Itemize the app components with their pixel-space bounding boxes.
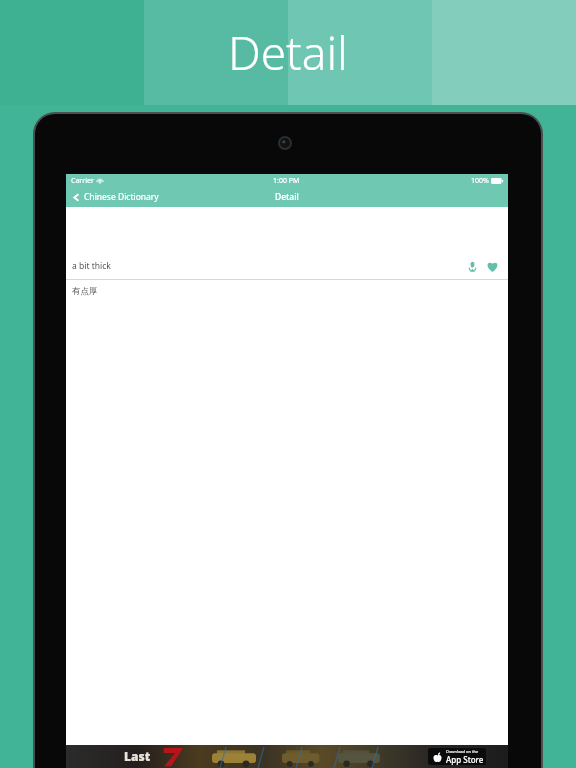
- staticText: Carrier: [71, 176, 94, 186]
- staticText: Last: [124, 748, 151, 764]
- staticText: 1:00 PM: [273, 176, 300, 186]
- staticText: App Store: [446, 754, 484, 765]
- staticText: Detail: [275, 191, 299, 203]
- staticText: 有点厚: [72, 286, 98, 297]
- button[interactable]: Chinese Dictionary: [70, 189, 161, 205]
- button[interactable]: Favorite: [483, 257, 501, 275]
- button[interactable]: Advertisement: [66, 745, 508, 768]
- button[interactable]: Download on the App Store: [428, 748, 486, 765]
- staticText: a bit thick: [72, 260, 111, 272]
- staticText: Download on the: [446, 749, 479, 754]
- staticText: Chinese Dictionary: [84, 191, 159, 203]
- staticText: Detail: [228, 21, 348, 84]
- staticText: 100%: [471, 176, 489, 186]
- button[interactable]: Speak: [463, 257, 481, 275]
